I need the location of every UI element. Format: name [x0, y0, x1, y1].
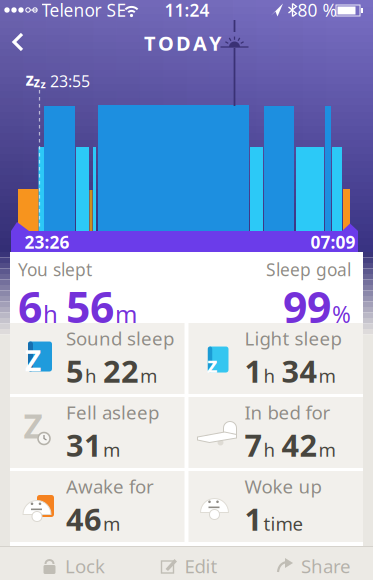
staticText: Edit — [184, 554, 217, 578]
staticText: m — [318, 363, 335, 388]
staticText: 5 — [66, 350, 84, 391]
staticText: 23:26 — [24, 230, 69, 253]
staticText: m — [115, 298, 137, 329]
staticText: 56 — [66, 278, 114, 335]
staticText: Fell asleep — [66, 400, 159, 424]
button[interactable]: Share — [262, 549, 366, 580]
staticText: Awake for — [66, 474, 154, 498]
staticText: Lock — [65, 554, 105, 578]
staticText: 99 — [283, 278, 331, 335]
staticText: Share — [301, 554, 351, 578]
staticText: Sleep goal — [266, 258, 351, 281]
staticText: 22 — [103, 350, 139, 391]
staticText: 23:55 — [50, 70, 90, 92]
staticText: 1 — [244, 350, 262, 391]
staticText: Light sleep — [244, 326, 341, 350]
button[interactable]: Lock — [21, 549, 125, 580]
staticText: Woke up — [244, 474, 321, 498]
button[interactable]: Edit — [137, 549, 241, 580]
staticText: time — [263, 511, 303, 536]
staticText: 1 — [244, 498, 262, 539]
staticText: In bed for — [244, 400, 330, 424]
staticText: h — [85, 363, 97, 388]
button[interactable] — [5, 26, 37, 58]
staticText: 07:09 — [310, 230, 355, 253]
staticText: 34 — [281, 350, 317, 391]
staticText: h — [263, 363, 275, 388]
staticText: 7 — [244, 424, 262, 465]
staticText: m — [103, 511, 120, 536]
staticText: z — [33, 73, 40, 91]
staticText: m — [318, 437, 335, 462]
staticText: m — [140, 363, 157, 388]
button[interactable]: Z — [10, 323, 184, 394]
staticText: T O D A Y — [144, 30, 222, 56]
staticText: 6 — [18, 278, 42, 335]
staticText: 46 — [66, 498, 102, 539]
staticText: Telenor SE — [41, 0, 126, 21]
button[interactable]: z — [188, 323, 363, 394]
staticText: m — [103, 437, 120, 462]
button[interactable]: Woke up — [188, 471, 363, 542]
staticText: z — [40, 77, 45, 91]
button[interactable]: Awake for — [10, 471, 184, 542]
staticText: Z — [25, 342, 41, 379]
staticText: % — [332, 299, 351, 329]
staticText: h — [263, 437, 275, 462]
staticText: 11:24 — [164, 0, 209, 21]
staticText: h — [43, 298, 58, 329]
staticText: Z — [23, 403, 42, 448]
staticText: z — [25, 67, 34, 90]
staticText: 42 — [281, 424, 317, 465]
staticText: Sound sleep — [66, 326, 174, 350]
staticText: z — [207, 350, 218, 379]
button[interactable]: Z — [10, 397, 184, 468]
staticText: You slept — [18, 258, 92, 281]
button[interactable]: In bed for — [188, 397, 363, 468]
staticText: 80 % — [297, 0, 336, 21]
staticText: 31 — [66, 424, 102, 465]
